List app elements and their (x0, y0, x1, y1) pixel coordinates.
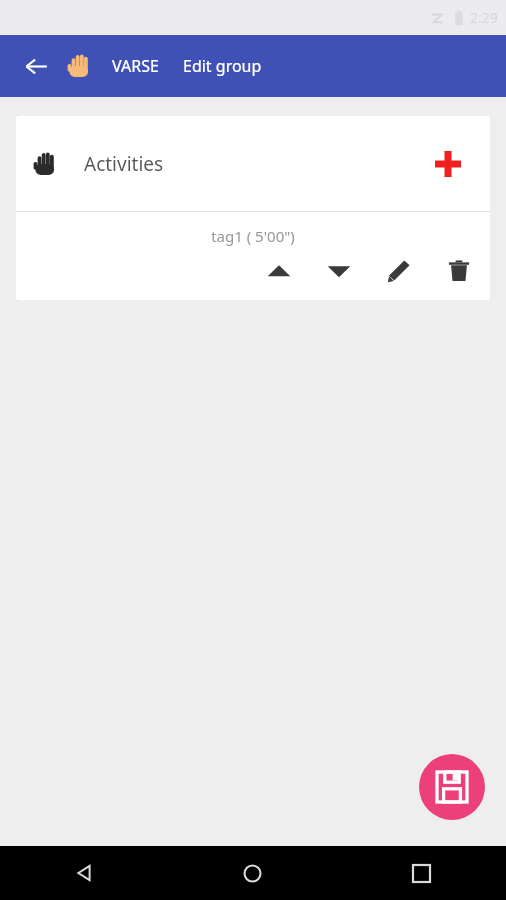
button[interactable]: Move down (320, 252, 358, 290)
button[interactable]: VARSE (112, 55, 159, 77)
button[interactable]: Delete (440, 252, 478, 290)
staticText: VARSE (112, 55, 159, 77)
button[interactable]: Activities (16, 116, 490, 211)
button[interactable]: Move up (260, 252, 298, 290)
staticText: 2:29 (470, 8, 498, 27)
button[interactable]: Edit group (183, 55, 262, 77)
staticText: tag1 ( 5'00") (16, 226, 490, 246)
staticText: Edit group (183, 55, 262, 77)
button[interactable]: Add activity (423, 139, 472, 188)
staticText: Activities (84, 151, 164, 177)
button[interactable]: Navigate up (14, 44, 58, 88)
button[interactable]: Recent apps (337, 846, 506, 900)
button[interactable]: Home (168, 846, 337, 900)
button[interactable]: Save (419, 754, 485, 820)
button[interactable]: tag1 ( 5'00") (16, 212, 490, 300)
button[interactable]: Edit (380, 252, 418, 290)
button[interactable]: Back (0, 846, 168, 900)
